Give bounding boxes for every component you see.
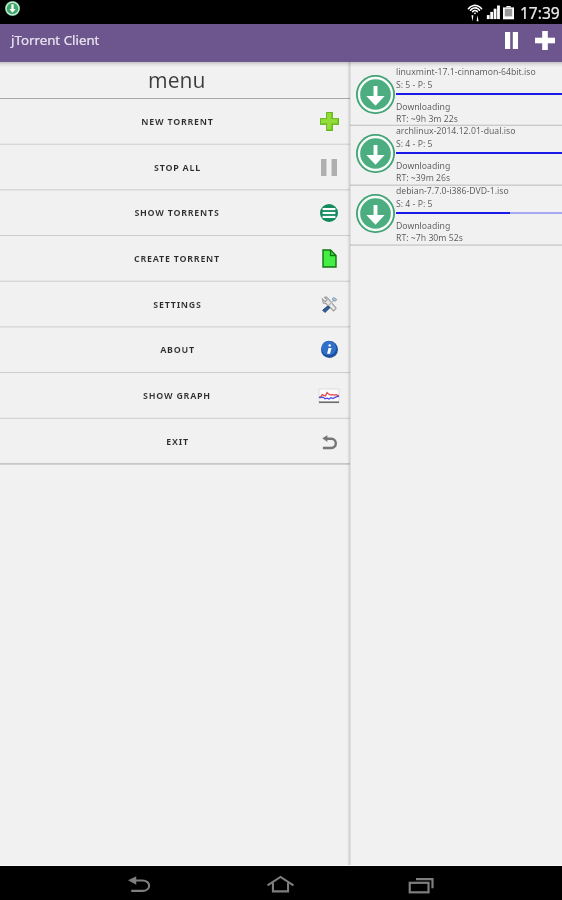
staticText: 17:39	[520, 2, 560, 23]
staticText: RT: ~39m 26s	[396, 172, 451, 184]
button[interactable]: debian-7.7.0-i386-DVD-1.iso	[350, 185, 562, 245]
staticText: SETTINGS	[153, 298, 202, 310]
staticText: RT: ~9h 3m 22s	[396, 113, 458, 125]
button[interactable]: Add torrent	[525, 24, 562, 62]
staticText: S: 4 - P: 5	[396, 198, 433, 210]
button[interactable]: Pause all	[491, 24, 531, 62]
staticText: Downloading	[396, 160, 451, 172]
staticText: debian-7.7.0-i386-DVD-1.iso	[396, 185, 509, 197]
button[interactable]: Back	[109, 866, 169, 900]
button[interactable]: Home	[250, 866, 310, 900]
button[interactable]: SHOW GRAPH	[0, 373, 350, 418]
button[interactable]: CREATE TORRENT	[0, 236, 350, 281]
staticText: Downloading	[396, 101, 451, 113]
staticText: STOP ALL	[154, 161, 201, 173]
staticText: linuxmint-17.1-cinnamon-64bit.iso	[396, 66, 536, 78]
staticText: S: 4 - P: 5	[396, 138, 433, 150]
button[interactable]: ABOUT	[0, 327, 350, 372]
staticText: EXIT	[166, 435, 189, 447]
staticText: NEW TORRENT	[141, 115, 214, 127]
staticText: menu	[148, 66, 206, 95]
button[interactable]: SHOW TORRENTS	[0, 190, 350, 235]
staticText: archlinux-2014.12.01-dual.iso	[396, 125, 516, 137]
staticText: jTorrent Client	[11, 31, 100, 49]
staticText: S: 5 - P: 5	[396, 79, 433, 91]
button[interactable]: archlinux-2014.12.01-dual.iso	[350, 125, 562, 185]
staticText: CREATE TORRENT	[134, 252, 220, 264]
button[interactable]: EXIT	[0, 419, 350, 464]
button[interactable]: SETTINGS	[0, 282, 350, 327]
staticText: Downloading	[396, 220, 451, 232]
button[interactable]: NEW TORRENT	[0, 99, 350, 144]
staticText: ABOUT	[160, 343, 195, 355]
button[interactable]: linuxmint-17.1-cinnamon-64bit.iso	[350, 66, 562, 126]
staticText: RT: ~7h 30m 52s	[396, 232, 463, 244]
staticText: SHOW TORRENTS	[134, 206, 220, 218]
staticText: SHOW GRAPH	[143, 389, 211, 401]
button[interactable]: STOP ALL	[0, 145, 350, 190]
button[interactable]: Recents	[391, 866, 451, 900]
